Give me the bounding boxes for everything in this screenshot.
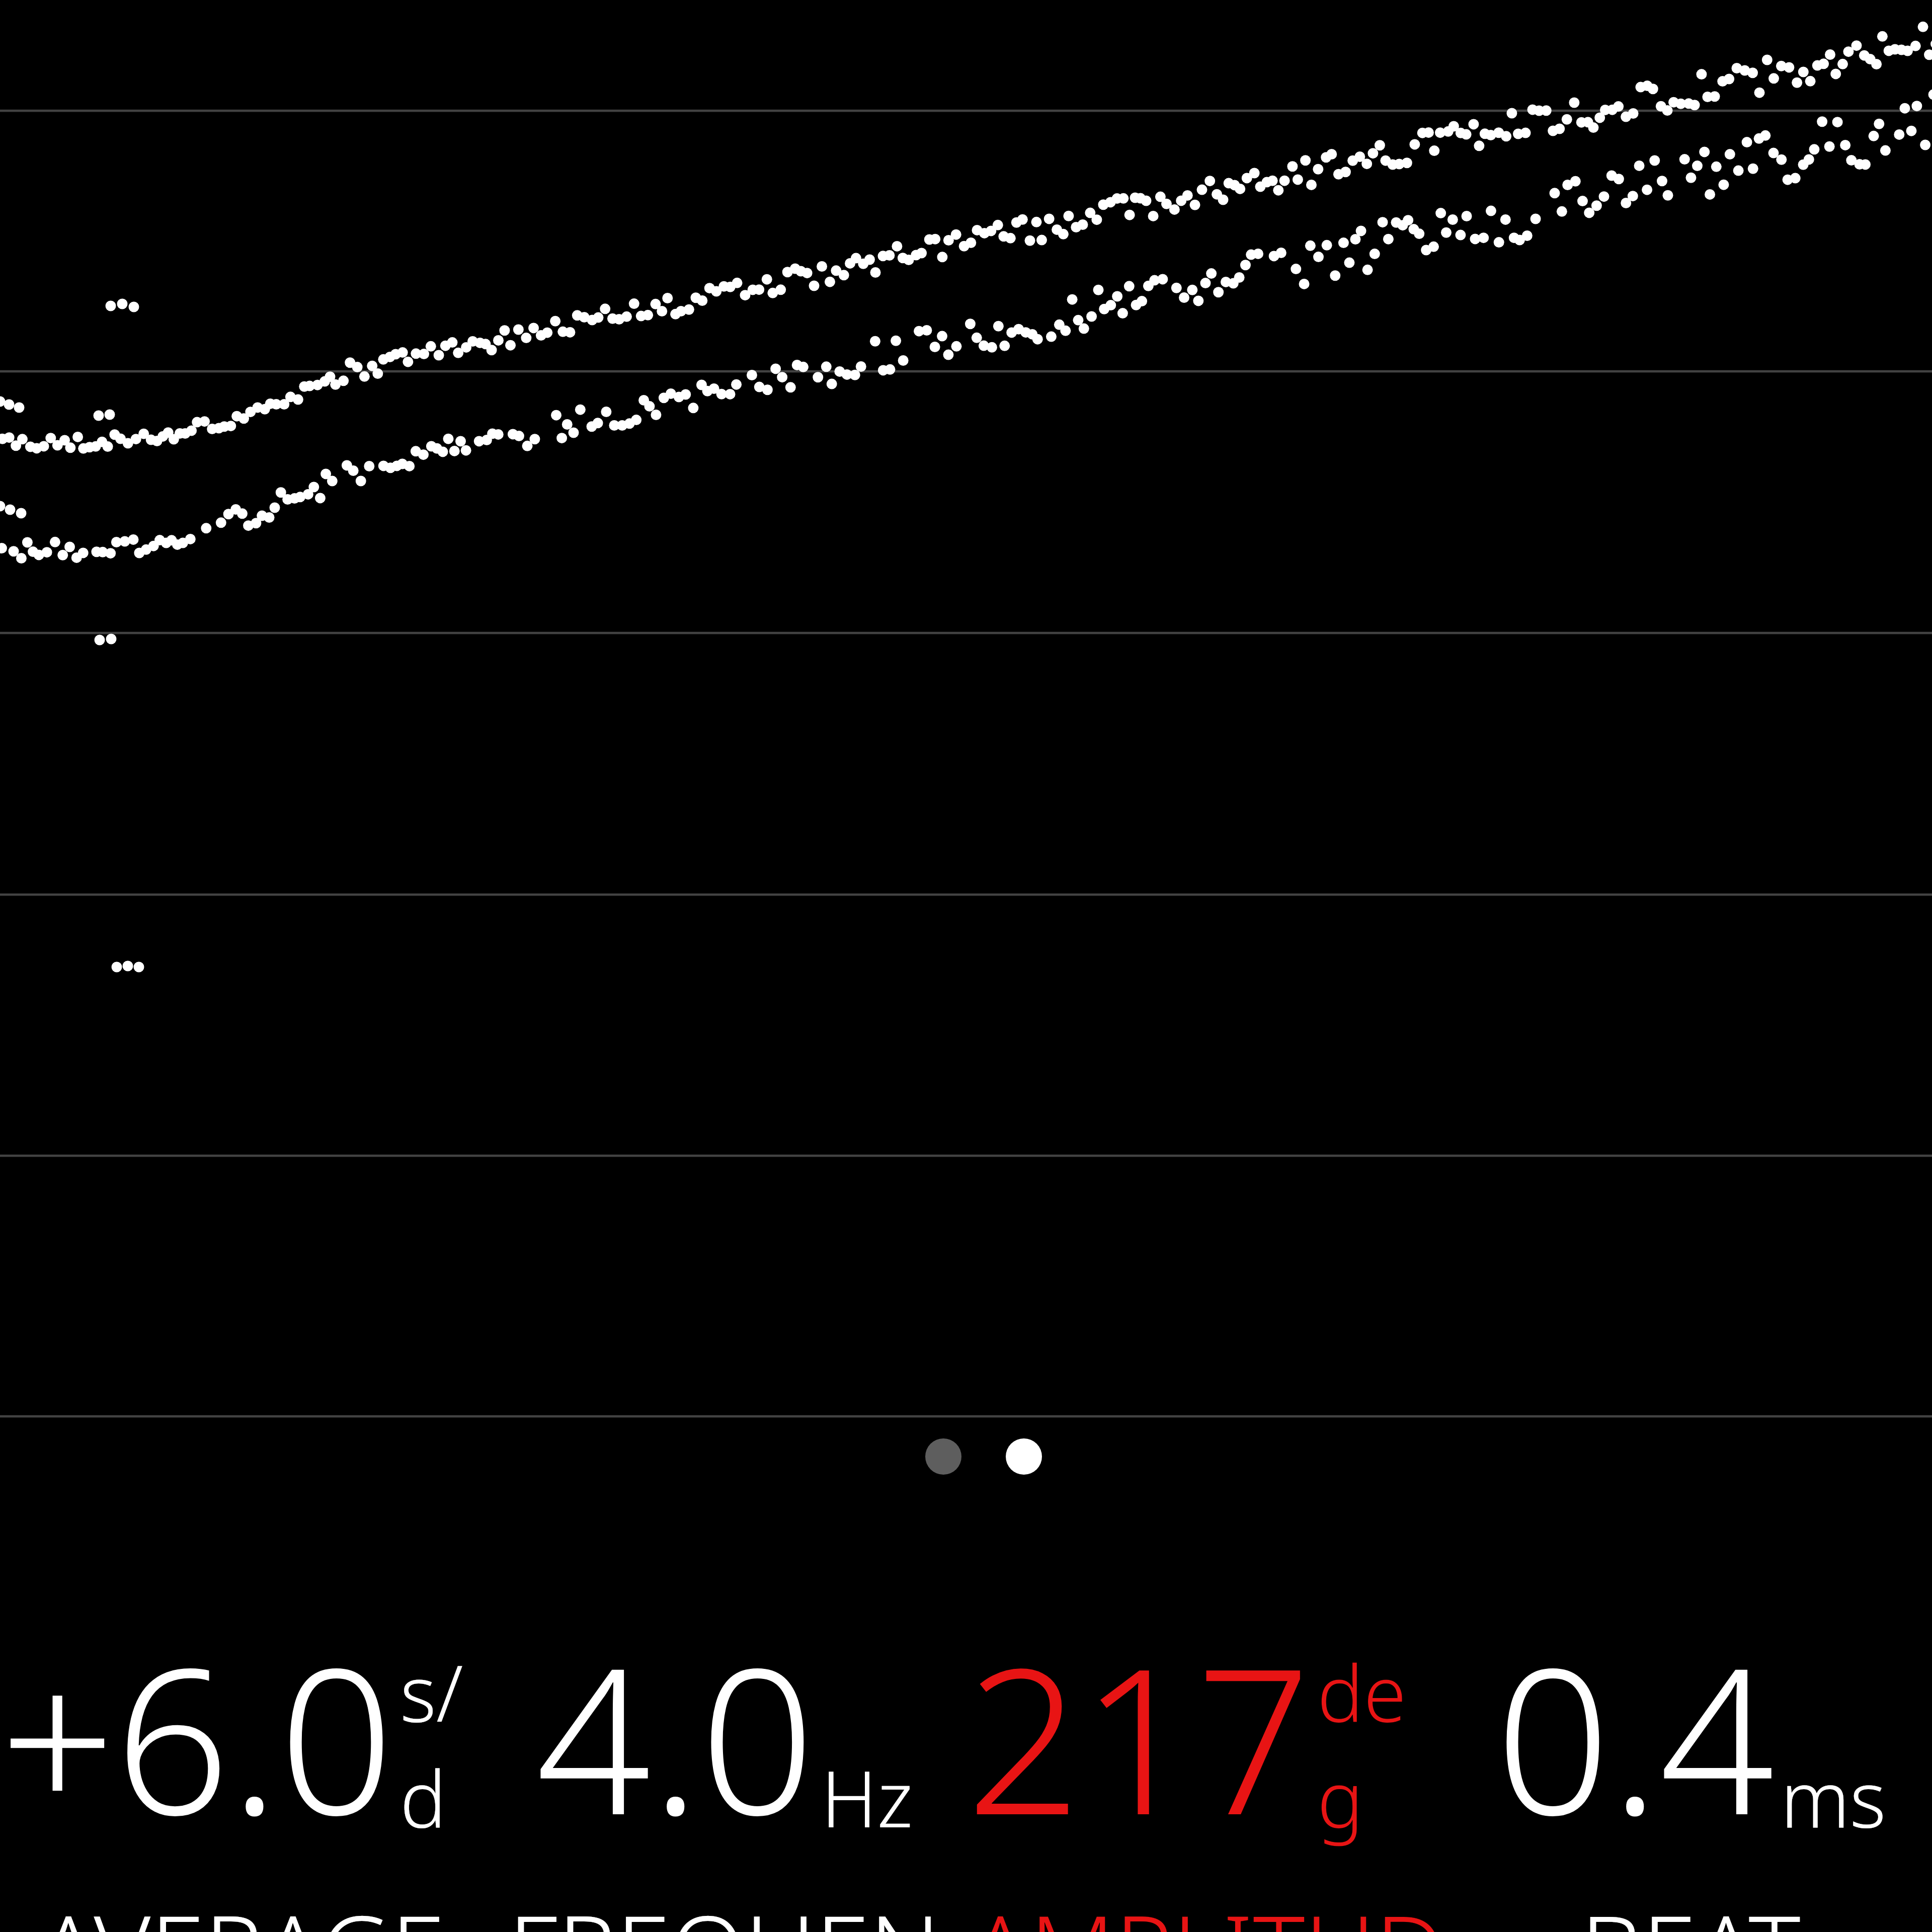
- button[interactable]: Page 1: [925, 1438, 961, 1475]
- staticText: FREQUENCY: [483, 1882, 966, 1932]
- button[interactable]: 4.0: [483, 1599, 966, 1932]
- staticText: ms: [1781, 1744, 1886, 1850]
- staticText: BEAT ERROR: [1449, 1882, 1932, 1932]
- button[interactable]: Page 2, selected: [1006, 1438, 1042, 1475]
- staticText: AVERAGE: [38, 1882, 445, 1932]
- button[interactable]: 217: [966, 1599, 1449, 1932]
- staticText: s/d: [400, 1639, 483, 1850]
- button[interactable]: Rate trace graph: [0, 0, 1932, 1454]
- button[interactable]: +6.0: [0, 1599, 483, 1932]
- staticText: Hz: [821, 1744, 913, 1850]
- staticText: deg: [1317, 1639, 1449, 1850]
- staticText: 4.0: [536, 1599, 815, 1873]
- button[interactable]: 0.4: [1449, 1599, 1932, 1932]
- staticText: AMPLITUDE: [966, 1882, 1449, 1932]
- staticText: 217: [966, 1599, 1311, 1873]
- staticText: 0.4: [1495, 1599, 1775, 1873]
- staticText: +6.0: [0, 1599, 394, 1873]
